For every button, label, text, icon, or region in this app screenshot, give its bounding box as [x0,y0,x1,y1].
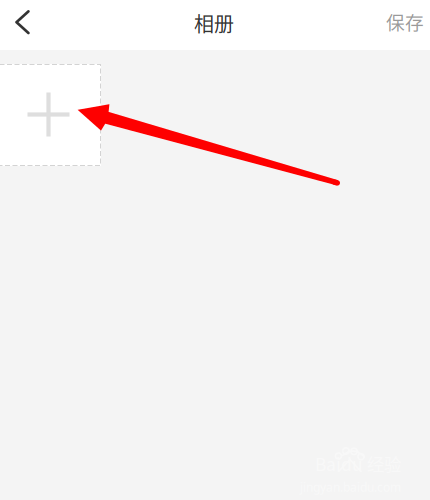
button[interactable]: 返回 [0,0,45,50]
button[interactable]: 添加照片 [0,64,101,166]
staticText: 相册 [194,8,234,37]
staticText: 保存 [386,8,424,35]
button[interactable]: 保存 [370,0,430,50]
